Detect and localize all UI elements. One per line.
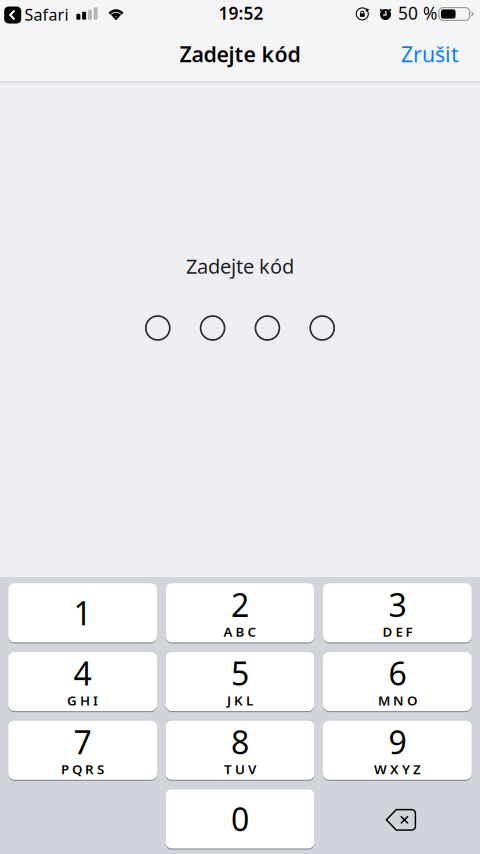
button[interactable]: 4: [8, 651, 157, 712]
staticText: 19:52: [218, 1, 263, 24]
staticText: Safari: [24, 4, 68, 25]
staticText: J K L: [227, 691, 253, 709]
staticText: 4: [74, 652, 92, 694]
button[interactable]: Zrušit: [394, 36, 466, 72]
staticText: 3: [388, 583, 406, 626]
staticText: 7: [74, 721, 92, 763]
button[interactable]: 0: [166, 789, 314, 849]
staticText: 5: [231, 652, 249, 694]
staticText: G H I: [67, 691, 98, 709]
button[interactable]: 5: [166, 651, 314, 712]
button[interactable]: 7: [8, 720, 157, 780]
staticText: 9: [388, 721, 406, 763]
staticText: 1: [74, 592, 92, 634]
staticText: 6: [388, 652, 406, 694]
button[interactable]: Delete: [323, 789, 472, 848]
staticText: 8: [231, 721, 249, 763]
staticText: Zadejte kód: [186, 253, 294, 279]
staticText: 50 %: [398, 1, 437, 24]
button[interactable]: 3: [323, 583, 472, 643]
staticText: 2: [231, 583, 249, 626]
staticText: T U V: [224, 760, 256, 778]
button[interactable]: 1: [8, 583, 157, 643]
button[interactable]: 8: [166, 720, 314, 780]
staticText: W X Y Z: [374, 760, 421, 778]
staticText: Zrušit: [401, 40, 459, 68]
staticText: A B C: [223, 623, 256, 640]
button[interactable]: 2: [166, 583, 314, 643]
button[interactable]: 6: [323, 651, 472, 712]
staticText: 0: [231, 798, 249, 840]
staticText: D E F: [382, 623, 412, 640]
button[interactable]: 9: [323, 720, 472, 780]
staticText: Zadejte kód: [179, 40, 300, 68]
button[interactable]: Safari: [4, 1, 72, 27]
staticText: P Q R S: [61, 760, 104, 778]
staticText: M N O: [378, 691, 417, 709]
